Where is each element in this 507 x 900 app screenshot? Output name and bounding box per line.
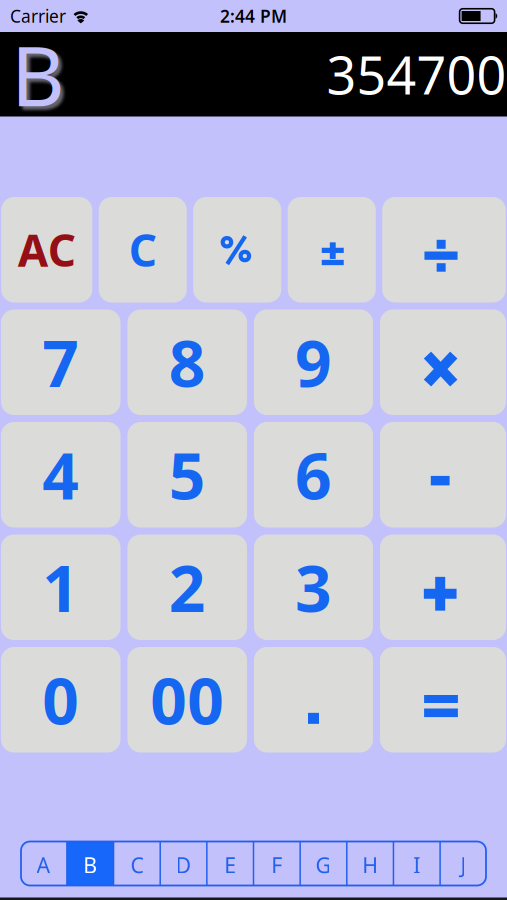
button[interactable]: Divide — [382, 197, 506, 302]
staticText: J — [460, 851, 466, 879]
staticText: 3 — [295, 545, 332, 630]
button[interactable]: Plus minus — [288, 197, 376, 302]
staticText: 354700 — [326, 40, 506, 109]
staticText: I — [413, 851, 420, 879]
button[interactable]: I — [394, 841, 439, 885]
button[interactable]: Multiply — [380, 309, 506, 415]
button[interactable]: C — [114, 841, 159, 885]
staticText: AC — [18, 220, 76, 279]
staticText: C — [129, 220, 157, 279]
staticText: 4 — [42, 432, 79, 517]
staticText: F — [271, 851, 282, 879]
button[interactable]: E — [208, 841, 253, 885]
button[interactable]: J — [441, 841, 486, 885]
staticText: Carrier — [10, 4, 66, 27]
button[interactable]: 4 — [1, 422, 120, 527]
staticText: H — [362, 851, 378, 879]
button[interactable]: A — [21, 841, 66, 885]
button[interactable]: 00 — [127, 647, 247, 752]
button[interactable]: Minus — [380, 422, 506, 527]
button[interactable]: 6 — [254, 422, 373, 527]
staticText: E — [224, 851, 236, 879]
staticText: 2 — [169, 545, 206, 630]
staticText: 00 — [150, 657, 224, 742]
button[interactable]: Equals — [380, 647, 506, 752]
staticText: 5 — [169, 432, 206, 517]
staticText: B — [11, 19, 65, 129]
staticText: A — [37, 851, 51, 879]
button[interactable]: 7 — [1, 309, 120, 415]
button[interactable]: D — [161, 841, 206, 885]
button[interactable]: 5 — [127, 422, 247, 527]
button[interactable]: 2 — [127, 534, 247, 640]
button[interactable]: 3 — [254, 534, 373, 640]
button[interactable]: B — [68, 841, 113, 885]
staticText: C — [130, 851, 143, 879]
button[interactable]: 9 — [254, 309, 373, 415]
button[interactable]: AC — [1, 197, 92, 302]
button[interactable]: Percent — [193, 197, 281, 302]
staticText: 9 — [295, 320, 332, 405]
button[interactable]: 0 — [1, 647, 120, 752]
button[interactable]: 8 — [127, 309, 247, 415]
staticText: 0 — [42, 657, 79, 742]
staticText: 6 — [295, 432, 332, 517]
staticText: 2:44 PM — [220, 4, 287, 27]
button[interactable]: H — [348, 841, 393, 885]
button[interactable]: 1 — [1, 534, 120, 640]
button[interactable]: Plus — [380, 534, 506, 640]
staticText: G — [315, 851, 331, 879]
staticText: B — [83, 851, 97, 879]
button[interactable]: C — [99, 197, 187, 302]
staticText: D — [175, 851, 191, 879]
staticText: 8 — [169, 320, 206, 405]
button[interactable]: G — [301, 841, 346, 885]
button[interactable]: Decimal point — [254, 647, 373, 752]
staticText: 1 — [42, 545, 79, 630]
button[interactable]: F — [254, 841, 299, 885]
staticText: 7 — [42, 320, 79, 405]
